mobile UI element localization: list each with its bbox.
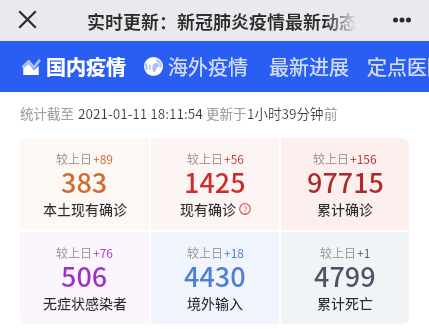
button[interactable]: 较上日 — [151, 138, 279, 230]
staticText: 最新进展 — [269, 52, 349, 81]
staticText: 383 — [61, 162, 108, 201]
button[interactable]: 较上日 — [281, 232, 409, 324]
button[interactable]: More options — [384, 3, 420, 39]
button[interactable]: 较上日 — [20, 138, 149, 230]
staticText: 较上日 — [320, 244, 357, 261]
button[interactable]: 国内疫情 — [22, 41, 126, 92]
button[interactable]: 较上日 — [151, 232, 279, 324]
button[interactable]: 海外疫情 — [144, 41, 248, 92]
staticText: 506 — [61, 256, 108, 295]
staticText: 国内疫情 — [46, 52, 126, 81]
staticText: 1小时39分钟 — [247, 103, 324, 123]
button[interactable]: Close — [11, 4, 44, 37]
staticText: +89 — [93, 150, 113, 167]
staticText: 海外疫情 — [168, 52, 248, 81]
staticText: 较上日 — [313, 150, 350, 167]
staticText: 较上日 — [56, 150, 93, 167]
button[interactable]: 最新进展 — [269, 41, 349, 92]
staticText: 统计截至 — [20, 103, 78, 123]
staticText: ? — [243, 203, 248, 215]
button[interactable]: 较上日 — [281, 138, 409, 230]
staticText: 较上日 — [187, 150, 224, 167]
staticText: 本土现有确诊 — [43, 199, 127, 219]
staticText: 现有确诊 — [180, 199, 236, 219]
staticText: 前 — [324, 103, 338, 123]
staticText: +156 — [350, 150, 377, 167]
staticText: 境外输入 — [187, 293, 243, 313]
staticText: 无症状感染者 — [43, 293, 127, 313]
staticText: 实时更新：新冠肺炎疫情最新动态 — [87, 8, 357, 34]
staticText: 更新于 — [203, 103, 247, 123]
staticText: 定点医院 — [367, 52, 429, 81]
staticText: 累计死亡 — [317, 293, 373, 313]
staticText: 1425 — [184, 162, 246, 201]
staticText: 4430 — [184, 256, 246, 295]
staticText: 较上日 — [56, 244, 93, 261]
staticText: 2021-01-11 18:11:54 — [78, 103, 203, 123]
staticText: +56 — [224, 150, 244, 167]
staticText: 累计确诊 — [317, 199, 373, 219]
button[interactable]: 较上日 — [20, 232, 149, 324]
staticText: 97715 — [307, 162, 384, 201]
staticText: 较上日 — [187, 244, 224, 261]
staticText: +18 — [224, 244, 244, 261]
staticText: +1 — [357, 244, 371, 261]
button[interactable]: 定点医院 — [367, 41, 429, 92]
staticText: +76 — [93, 244, 113, 261]
staticText: 4799 — [314, 256, 376, 295]
